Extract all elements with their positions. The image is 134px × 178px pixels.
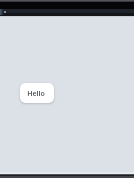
staticText: Hello [27, 89, 45, 99]
button[interactable]: Hello [20, 83, 54, 103]
